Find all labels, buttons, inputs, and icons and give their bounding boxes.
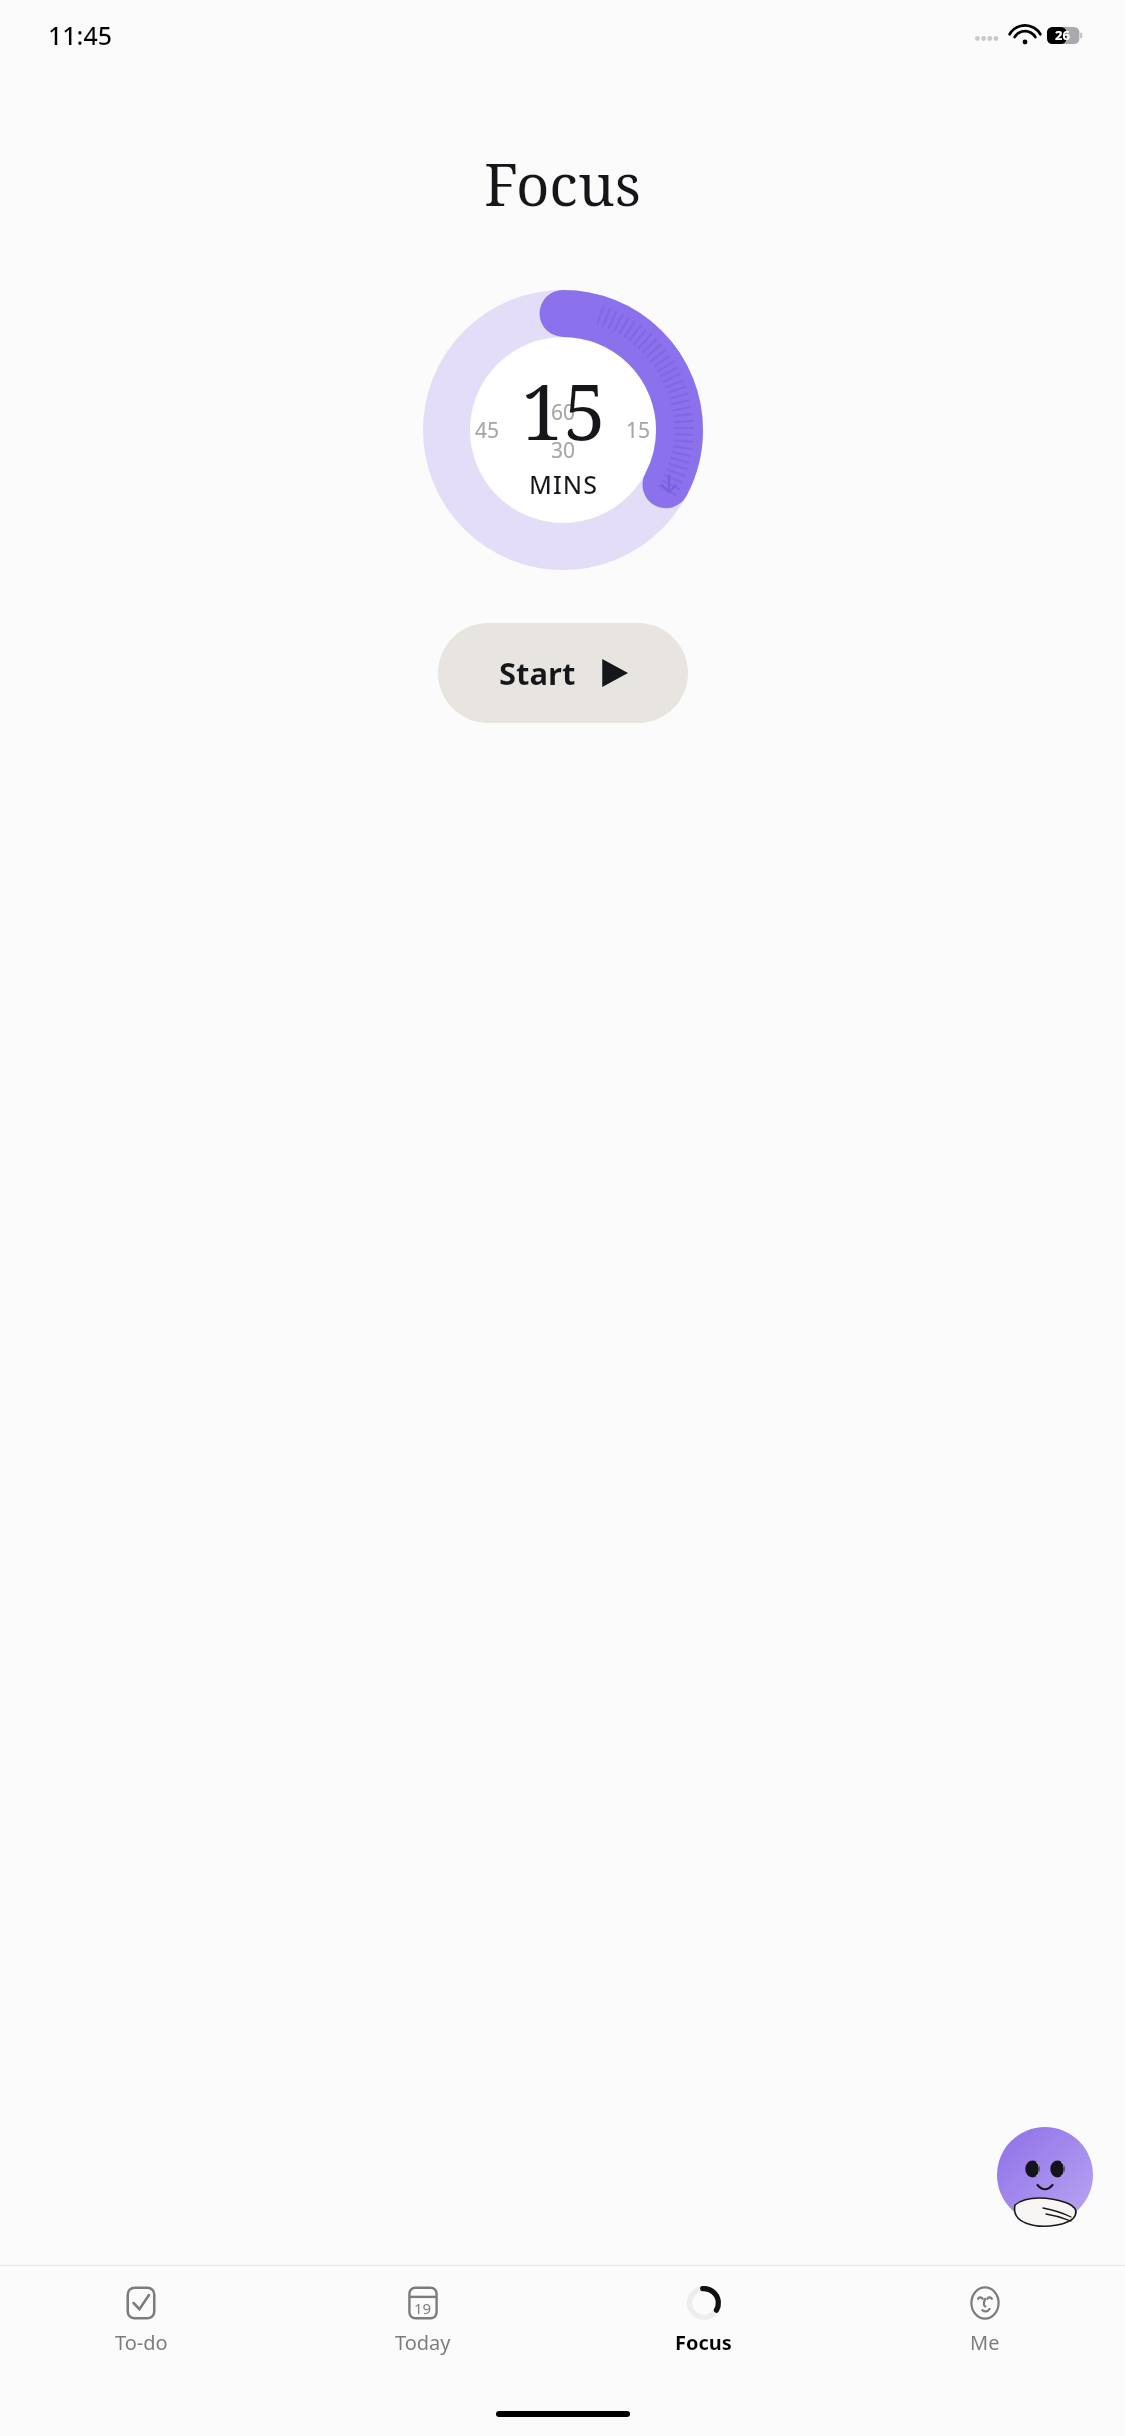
button[interactable]: Me [844,2266,1125,2376]
staticText: 30 [551,436,576,465]
button[interactable]: To-do [0,2266,282,2376]
staticText: Me [970,2329,1000,2356]
button[interactable]: Focus duration dial, 15 minutes [423,290,703,570]
staticText: 15 [626,416,651,445]
button[interactable]: 19 [282,2266,563,2376]
staticText: Focus [675,2329,732,2356]
staticText: 19 [414,2298,432,2318]
staticText: Focus [484,144,641,223]
staticText: Start [499,652,576,694]
staticText: MINS [529,467,598,501]
button[interactable]: Assistant [995,2129,1095,2229]
staticText: 60 [551,398,576,427]
staticText: To-do [115,2329,168,2356]
staticText: 26 [1055,26,1070,44]
staticText: 45 [475,416,500,445]
staticText: 11:45 [48,18,113,52]
staticText: Today [395,2329,451,2356]
staticText: 15 [521,359,606,463]
button[interactable]: Focus [563,2266,844,2376]
button[interactable]: Start [438,623,688,723]
